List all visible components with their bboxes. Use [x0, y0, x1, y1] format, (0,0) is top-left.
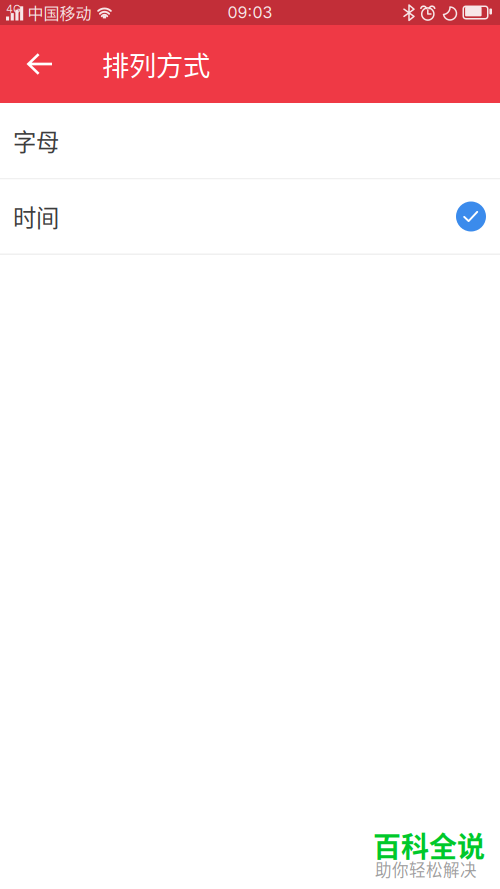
staticText: 助你轻松解决	[375, 857, 477, 881]
staticText: 中国移动	[27, 1, 91, 24]
staticText: 排列方式	[102, 44, 210, 84]
button[interactable]: Back	[0, 25, 102, 103]
staticText: 百科全说	[373, 825, 485, 865]
button[interactable]: 字母	[0, 103, 500, 178]
staticText: 字母	[13, 124, 59, 157]
staticText: 4G	[6, 2, 21, 15]
button[interactable]: 时间	[0, 179, 500, 253]
staticText: 时间	[13, 200, 59, 233]
staticText: 09:03	[227, 3, 272, 22]
